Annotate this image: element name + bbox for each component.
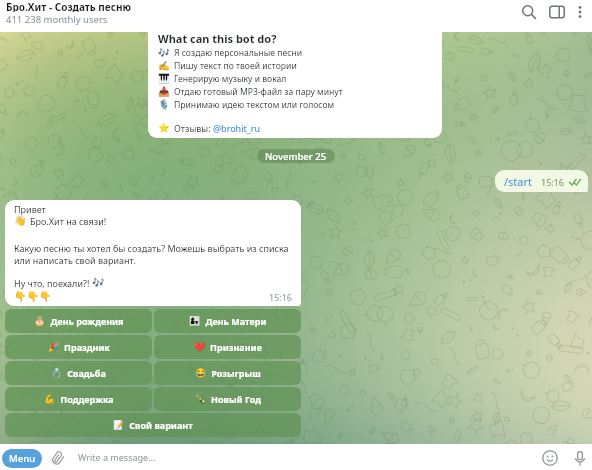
button[interactable]: More options — [568, 0, 592, 24]
button[interactable]: Voice message — [569, 447, 590, 468]
staticText: Поддержка — [60, 393, 114, 405]
staticText: Write a message... — [78, 451, 156, 463]
staticText: What can this bot do? — [158, 31, 277, 46]
button[interactable]: What can this bot do? — [148, 26, 442, 138]
button[interactable]: Emoji — [539, 447, 560, 468]
staticText: 💪 — [44, 394, 56, 405]
staticText: 🍾 — [195, 394, 207, 405]
button[interactable]: 💍 — [5, 361, 152, 385]
staticText: Новый Год — [211, 393, 261, 405]
button[interactable]: 😂 — [154, 361, 301, 385]
staticText: Признание — [210, 341, 262, 353]
staticText: Menu — [9, 452, 36, 465]
staticText: 😂 — [195, 368, 207, 379]
staticText: 📝 — [113, 420, 125, 431]
staticText: День Матери — [205, 315, 267, 327]
staticText: Бро.Хит на связи! — [30, 215, 107, 227]
staticText: Отдаю готовый MP3-файл за пару минут — [174, 86, 343, 98]
button[interactable]: Attach file — [48, 448, 68, 468]
staticText: Праздник — [64, 341, 110, 353]
staticText: 👩‍👧 — [189, 316, 201, 327]
staticText: Пишу текст по твоей истории — [174, 60, 297, 72]
staticText: 15:16 — [269, 291, 293, 303]
staticText: 🎶 — [92, 277, 105, 289]
staticText: 👋 — [14, 215, 27, 227]
staticText: November 25 — [265, 150, 327, 163]
staticText: ✍️ — [158, 60, 170, 71]
staticText: Ну что, поехали?! — [14, 277, 92, 289]
button[interactable]: Side panel — [545, 0, 569, 24]
button[interactable]: Menu — [2, 449, 42, 468]
button[interactable]: 🎉 — [5, 335, 152, 359]
button[interactable]: Search — [517, 0, 541, 24]
staticText: Принимаю идею текстом или голосом — [174, 99, 335, 111]
staticText: 🎙️ — [158, 99, 170, 110]
button[interactable]: 🍾 — [154, 387, 301, 411]
staticText: Отзывы: — [174, 122, 213, 134]
staticText: Бро.Хит - Создать песню — [6, 0, 131, 12]
staticText: 411 238 monthly users — [6, 13, 108, 25]
button[interactable]: 💪 — [5, 387, 152, 411]
staticText: 🎂 — [34, 316, 46, 327]
button[interactable]: Привет — [5, 200, 301, 306]
staticText: Я создаю персональные песни — [174, 47, 303, 59]
staticText: 15:16 — [541, 176, 565, 188]
button[interactable]: 👩‍👧 — [154, 309, 301, 333]
staticText: /start — [504, 174, 533, 189]
button[interactable]: 📝 — [5, 413, 301, 437]
staticText: Розыгрыш — [211, 367, 261, 379]
staticText: Привет — [14, 203, 46, 215]
button[interactable]: ❤️ — [154, 335, 301, 359]
staticText: ❤️ — [194, 342, 206, 353]
staticText: или написать свой вариант. — [14, 254, 136, 266]
staticText: Какую песню ты хотел бы создать? Можешь … — [14, 242, 289, 254]
staticText: 💍 — [51, 368, 63, 379]
button[interactable]: November 25 — [257, 149, 335, 163]
staticText: 👇👇👇 — [14, 291, 52, 303]
button[interactable]: 🎂 — [5, 309, 152, 333]
button[interactable]: /start — [495, 170, 588, 192]
staticText: 📥 — [158, 86, 170, 97]
staticText: День рождения — [50, 315, 124, 327]
staticText: ⭐ — [158, 122, 170, 133]
staticText: Свадьба — [67, 367, 106, 379]
staticText: 🎉 — [48, 342, 60, 353]
staticText: Свой вариант — [129, 419, 193, 431]
staticText: 🎹 — [158, 73, 170, 84]
staticText: Генерирую музыку и вокал — [174, 73, 287, 85]
staticText: 🎶 — [158, 47, 170, 58]
staticText: @brohit_ru — [213, 122, 261, 134]
